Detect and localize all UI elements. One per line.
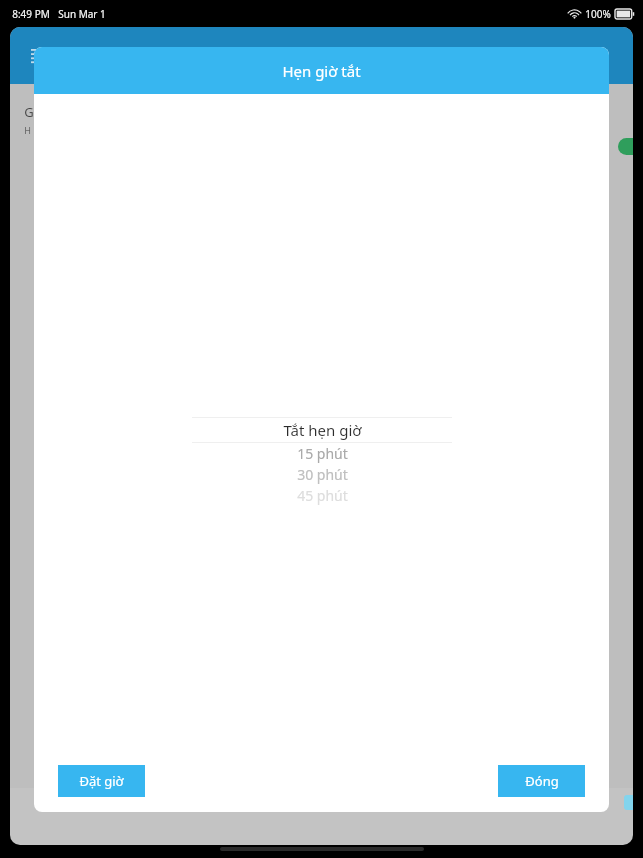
staticText: 100% bbox=[585, 7, 611, 21]
staticText: 15 phút bbox=[297, 444, 348, 463]
button[interactable]: Đặt giờ bbox=[58, 765, 145, 797]
staticText: Cài đặt bbox=[297, 46, 346, 66]
button[interactable]: 45 phút bbox=[192, 485, 452, 506]
button[interactable]: 30 phút bbox=[192, 464, 452, 485]
staticText: Tắt hẹn giờ bbox=[283, 420, 362, 440]
staticText: H bbox=[24, 124, 31, 136]
staticText: Đóng bbox=[525, 772, 559, 790]
staticText: Hẹn giờ tắt bbox=[282, 61, 361, 81]
staticText: Đặt giờ bbox=[79, 772, 124, 790]
staticText: 30 phút bbox=[297, 465, 348, 484]
button[interactable]: Đóng bbox=[498, 765, 585, 797]
staticText: 8:49 PM bbox=[12, 7, 50, 21]
staticText: Sun Mar 1 bbox=[58, 7, 106, 21]
button[interactable]: Tắt hẹn giờ bbox=[192, 418, 452, 442]
button[interactable]: Menu bbox=[24, 41, 54, 71]
button[interactable]: 15 phút bbox=[192, 443, 452, 464]
staticText: G bbox=[24, 103, 34, 121]
staticText: 45 phút bbox=[297, 486, 348, 505]
